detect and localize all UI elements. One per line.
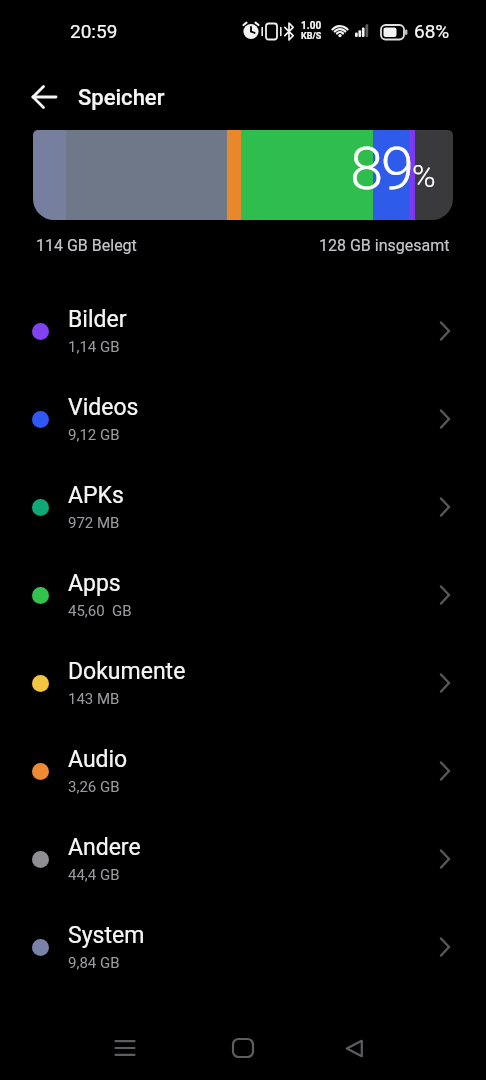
staticText: KB/S (301, 31, 322, 42)
staticText: Bilder (68, 306, 127, 333)
staticText: 128 GB insgesamt (319, 236, 450, 255)
staticText: Dokumente (68, 658, 186, 685)
staticText: 20:59 (70, 20, 118, 42)
staticText: 114 GB Belegt (36, 236, 137, 255)
staticText: 45,60 GB (68, 602, 132, 620)
staticText: 143 MB (68, 690, 120, 708)
button[interactable]: Videos (0, 375, 486, 463)
staticText: Videos (68, 394, 139, 421)
button[interactable]: Dokumente (0, 639, 486, 727)
button[interactable]: Andere (0, 815, 486, 903)
button[interactable] (219, 1024, 267, 1072)
staticText: 972 MB (68, 514, 120, 532)
button[interactable]: APKs (0, 463, 486, 551)
staticText: 9,84 GB (68, 954, 120, 972)
staticText: Andere (68, 834, 141, 861)
button[interactable]: System (0, 903, 486, 991)
staticText: Speicher (78, 85, 165, 111)
button[interactable]: Apps (0, 551, 486, 639)
staticText: 1,14 GB (68, 338, 120, 356)
button[interactable] (330, 1024, 378, 1072)
staticText: Audio (68, 746, 128, 773)
staticText: 68% (414, 20, 450, 42)
staticText: APKs (68, 482, 124, 509)
staticText: 44,4 GB (68, 866, 120, 884)
staticText: 89 (350, 133, 412, 203)
staticText: 3,26 GB (68, 778, 120, 796)
button[interactable] (101, 1024, 149, 1072)
staticText: % (412, 157, 436, 195)
button[interactable] (22, 75, 66, 119)
button[interactable]: Bilder (0, 287, 486, 375)
staticText: Apps (68, 570, 121, 597)
staticText: System (68, 922, 145, 949)
staticText: 1.00 (301, 20, 322, 32)
staticText: 9,12 GB (68, 426, 120, 444)
button[interactable]: Audio (0, 727, 486, 815)
